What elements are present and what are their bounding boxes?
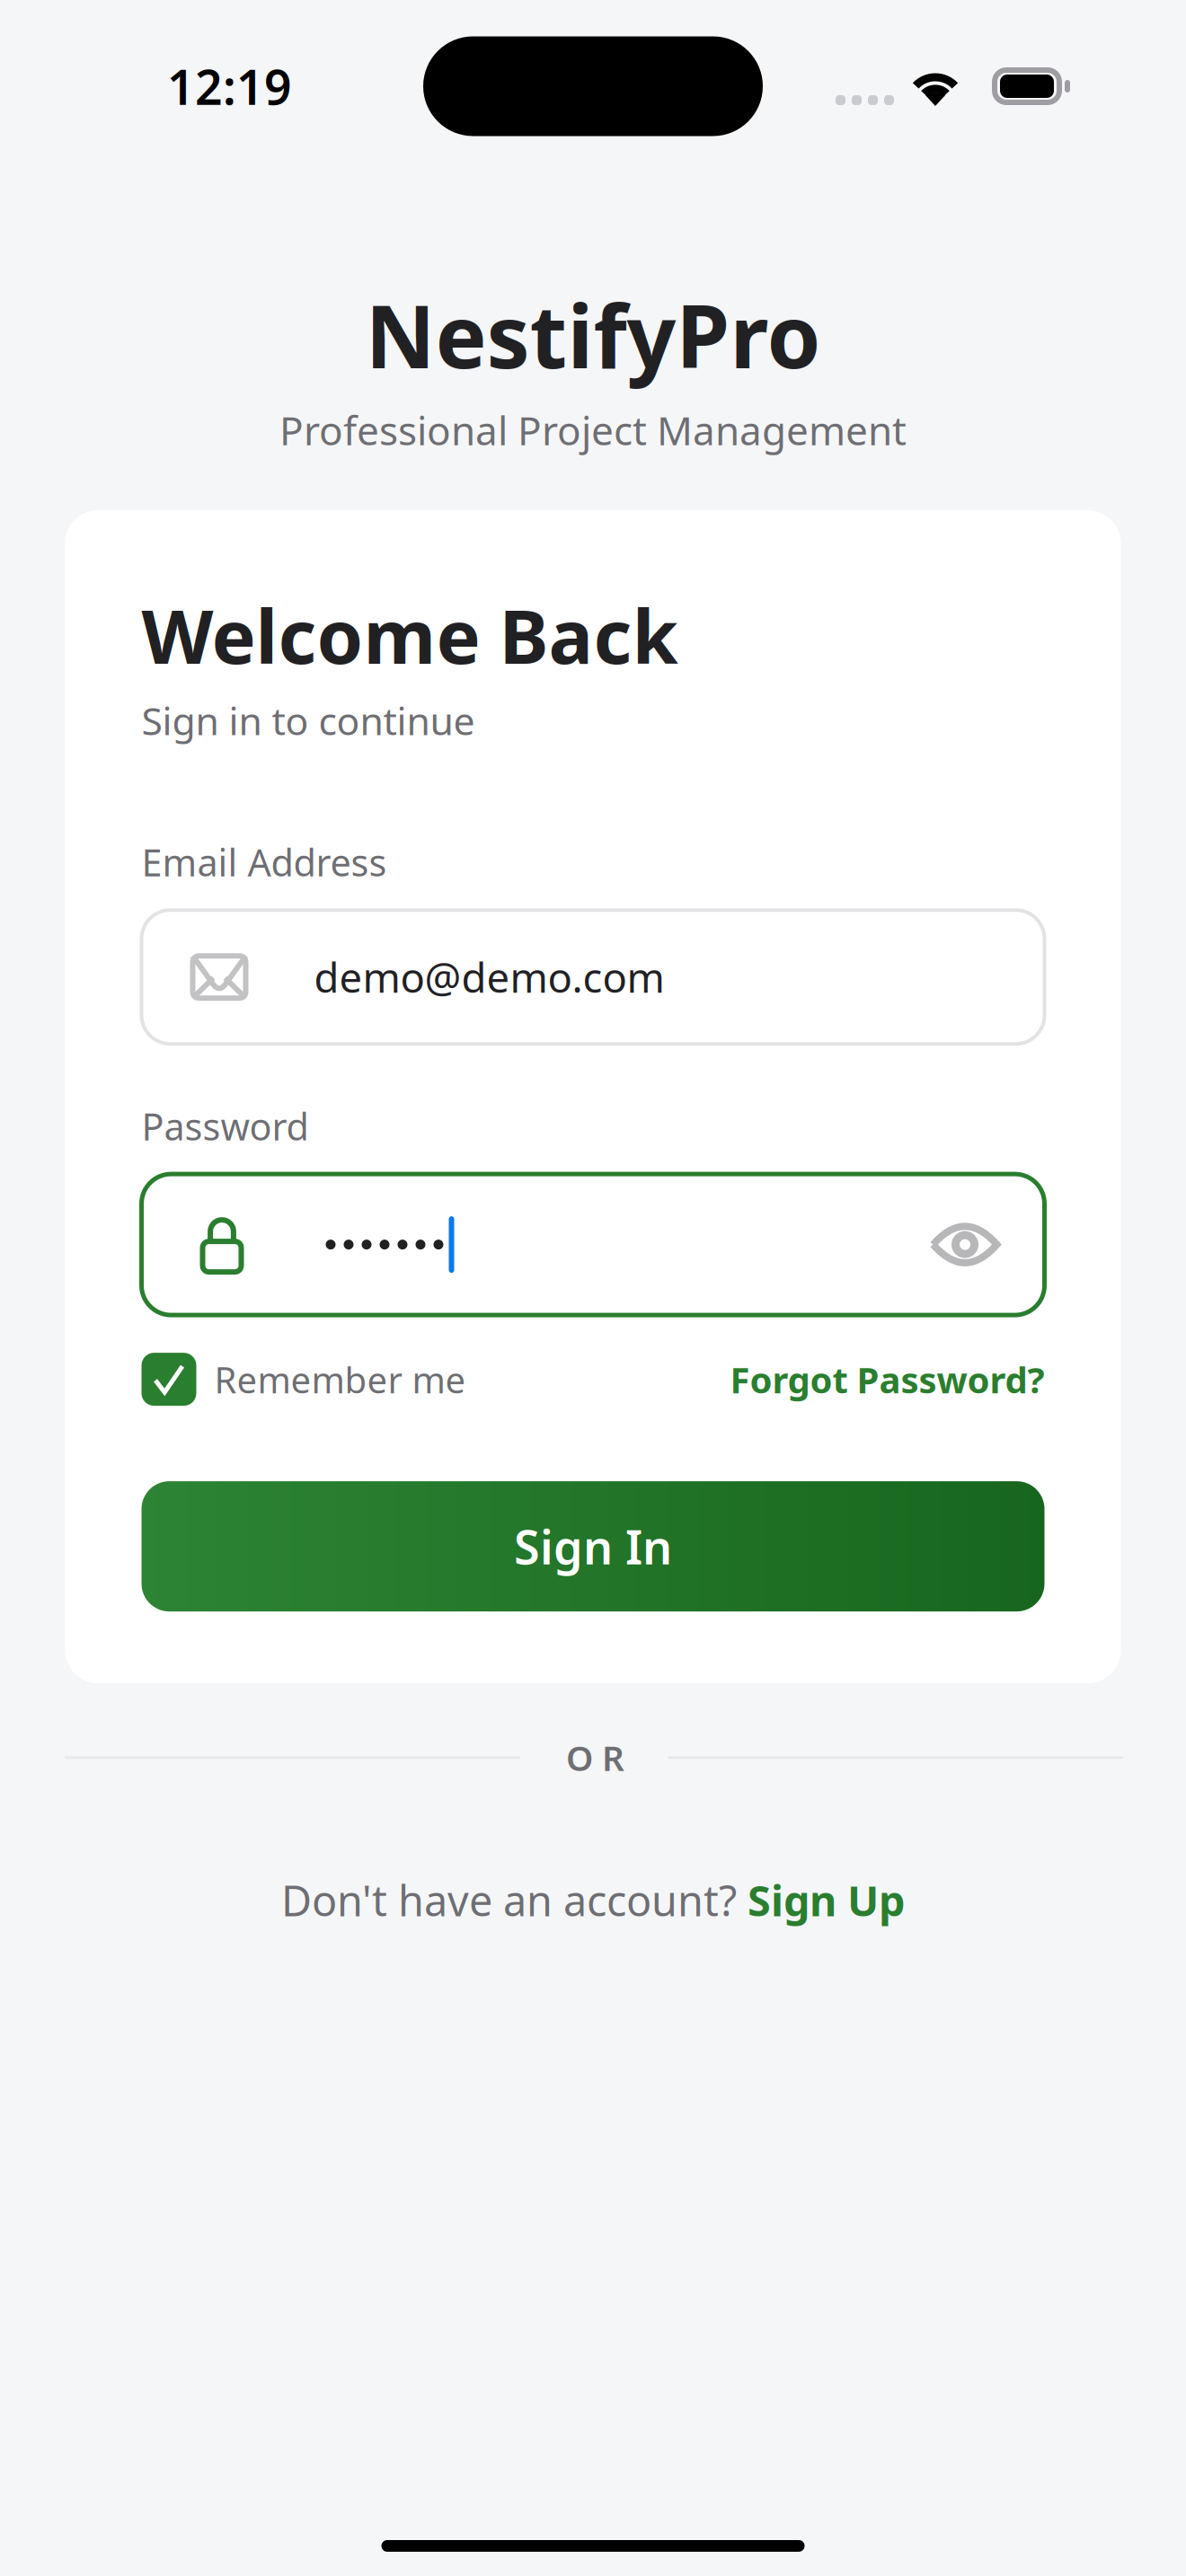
button[interactable]: Sign In xyxy=(142,1481,1044,1611)
staticText: demo@demo.com xyxy=(314,950,664,1004)
staticText: Remember me xyxy=(214,1355,466,1403)
staticText: Don't have an account? xyxy=(281,1872,748,1928)
staticText: Email Address xyxy=(142,837,387,887)
button[interactable]: Don't have an account? xyxy=(281,1872,905,1928)
staticText: Sign Up xyxy=(748,1872,905,1928)
staticText: NestifyPro xyxy=(365,278,821,392)
staticText: Password xyxy=(142,1101,309,1151)
button[interactable]: Forgot Password? xyxy=(730,1355,1044,1403)
staticText: Sign In xyxy=(514,1515,672,1577)
staticText: O R xyxy=(566,1734,624,1781)
button[interactable]: Remember me xyxy=(142,1353,466,1406)
button[interactable]: Show password xyxy=(933,1224,1044,1265)
staticText: Forgot Password? xyxy=(730,1355,1044,1403)
staticText: 12:19 xyxy=(167,54,292,118)
staticText: Sign in to continue xyxy=(142,695,475,746)
staticText: Professional Project Management xyxy=(279,404,907,456)
staticText: Welcome Back xyxy=(142,586,678,684)
